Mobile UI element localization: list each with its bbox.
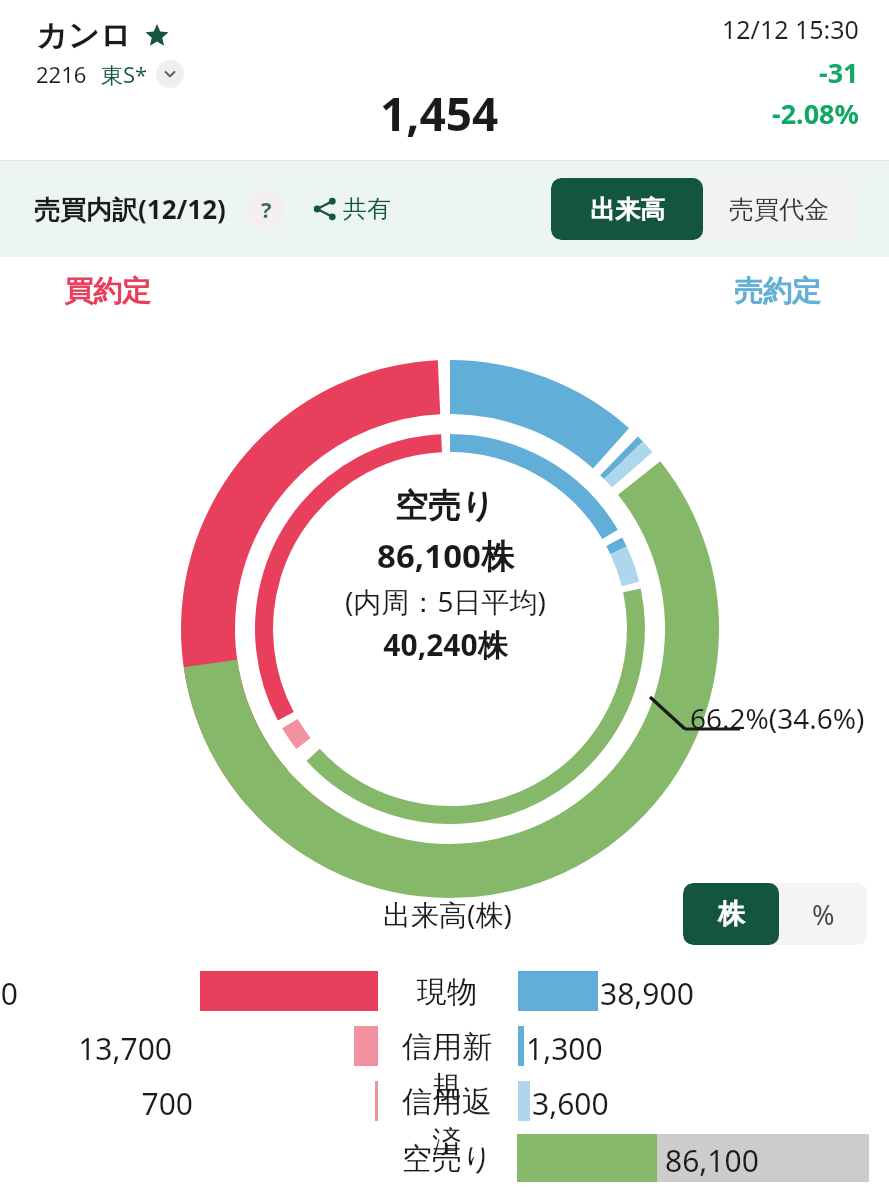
button[interactable]: 株 — [683, 883, 779, 945]
staticText: 38,900 — [600, 973, 694, 1014]
staticText: 現物 — [392, 973, 502, 1011]
staticText: 信用新規 — [392, 1028, 502, 1106]
staticText: 13,700 — [22, 1028, 172, 1069]
staticText: 3,600 — [532, 1083, 609, 1124]
staticText: 2216 — [36, 59, 87, 89]
button[interactable]: 出来高 — [551, 178, 703, 240]
staticText: 売買内訳(12/12) — [34, 191, 226, 227]
button[interactable]: 市場を切り替え — [156, 60, 184, 88]
staticText: 共有 — [343, 194, 391, 224]
staticText: 空売り — [402, 1140, 493, 1178]
staticText: 86,100株 — [377, 533, 514, 578]
staticText: 信用返済 — [392, 1083, 502, 1161]
staticText: (内周：5日平均) — [345, 582, 546, 620]
staticText: 出来高(株) — [383, 895, 512, 933]
staticText: カンロ — [36, 16, 132, 55]
button[interactable]: ヘルプ — [248, 191, 284, 227]
staticText: -31 — [819, 54, 859, 91]
staticText: ? — [261, 194, 272, 224]
staticText: 東S* — [101, 59, 148, 89]
staticText: 40,240株 — [383, 624, 508, 665]
staticText: 1,300 — [526, 1028, 603, 1069]
staticText: 12/12 15:30 — [722, 12, 859, 46]
staticText: 空売り — [395, 485, 495, 527]
staticText: 株 — [718, 897, 745, 931]
staticText: 115,500 — [0, 973, 18, 1014]
button[interactable]: % — [779, 883, 867, 945]
staticText: 売買代金 — [729, 194, 829, 225]
staticText: % — [812, 896, 835, 933]
staticText: 売約定 — [734, 273, 821, 310]
staticText: 出来高 — [590, 194, 665, 225]
staticText: 1,454 — [380, 82, 499, 145]
staticText: 700 — [43, 1083, 193, 1124]
staticText: -2.08% — [772, 95, 859, 132]
staticText: 86,100 — [665, 1140, 759, 1181]
button[interactable]: 売買代金 — [703, 178, 855, 240]
button[interactable]: お気に入り — [142, 21, 172, 51]
button[interactable]: 共有 — [308, 188, 395, 230]
staticText: 66.2%(34.6%) — [690, 699, 865, 737]
staticText: 買約定 — [64, 273, 151, 310]
